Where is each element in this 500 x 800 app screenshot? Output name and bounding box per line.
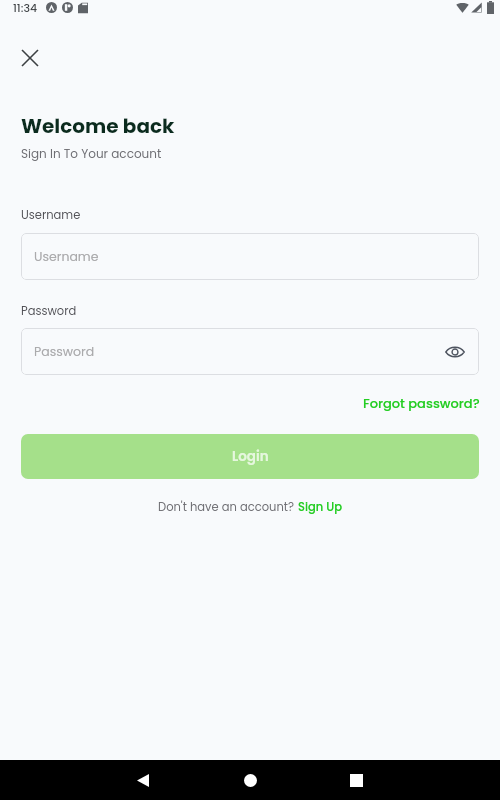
button[interactable]: Recent apps xyxy=(332,760,380,800)
button[interactable]: Sign Up xyxy=(298,499,342,515)
button[interactable]: Close xyxy=(10,38,50,78)
staticText: Login xyxy=(232,447,269,466)
staticText: 11:34 xyxy=(13,0,38,15)
staticText: Username xyxy=(34,248,99,265)
button[interactable]: Forgot password? xyxy=(363,394,480,412)
button[interactable]: Back xyxy=(119,760,167,800)
staticText: Password xyxy=(34,343,95,360)
button[interactable]: Show password xyxy=(440,337,470,367)
staticText: Password xyxy=(21,303,77,319)
button[interactable]: Username xyxy=(21,233,479,280)
staticText: Forgot password? xyxy=(363,394,480,412)
staticText: Welcome back xyxy=(21,112,175,140)
staticText: Username xyxy=(21,207,81,223)
button[interactable]: Home xyxy=(226,760,274,800)
staticText: Sign Up xyxy=(298,499,342,515)
staticText: Sign In To Your account xyxy=(21,145,162,162)
button[interactable]: Login xyxy=(21,434,479,479)
button[interactable]: Password xyxy=(21,328,479,375)
staticText: Don't have an account? xyxy=(158,499,298,515)
